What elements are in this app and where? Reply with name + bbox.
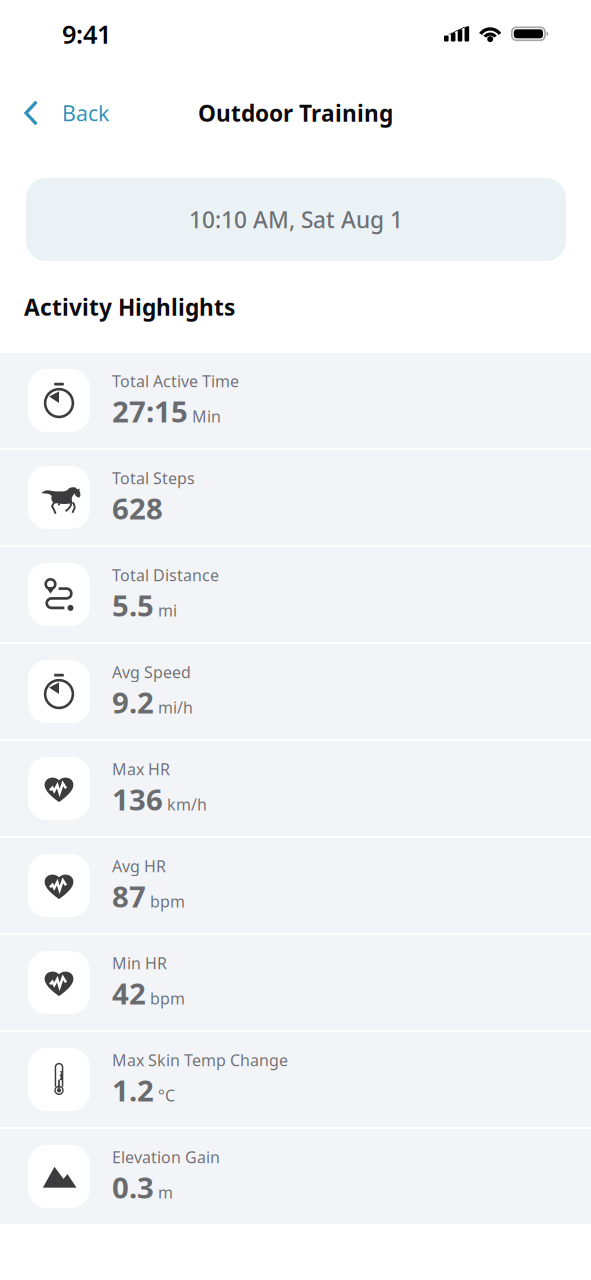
staticText: Elevation Gain — [112, 1146, 220, 1168]
staticText: Min — [192, 406, 221, 427]
staticText: mi — [158, 600, 177, 621]
staticText: 1.2 — [112, 1071, 154, 1110]
staticText: 9:41 — [62, 17, 111, 51]
staticText: 42 — [112, 974, 146, 1013]
staticText: 9.2 — [112, 683, 154, 722]
button[interactable]: Max Skin Temp Change — [0, 1032, 591, 1127]
button[interactable]: Total Distance — [0, 547, 591, 642]
button[interactable]: Back — [0, 88, 123, 138]
button[interactable]: Total Steps — [0, 450, 591, 545]
staticText: 87 — [112, 877, 146, 916]
staticText: Total Active Time — [112, 370, 239, 392]
button[interactable]: Elevation Gain — [0, 1129, 591, 1224]
staticText: bpm — [150, 891, 185, 912]
staticText: 136 — [112, 780, 163, 819]
staticText: Max HR — [112, 758, 170, 780]
button[interactable]: Avg HR — [0, 838, 591, 933]
button[interactable]: Total Active Time — [0, 353, 591, 448]
staticText: Total Steps — [112, 467, 195, 489]
staticText: 10:10 AM, Sat Aug 1 — [189, 204, 403, 234]
staticText: mi/h — [158, 697, 193, 718]
staticText: Avg Speed — [112, 661, 191, 683]
staticText: °C — [158, 1085, 175, 1106]
staticText: km/h — [167, 794, 207, 815]
staticText: Max Skin Temp Change — [112, 1049, 288, 1071]
staticText: 628 — [112, 489, 163, 528]
button[interactable]: Max HR — [0, 741, 591, 836]
staticText: 27:15 — [112, 392, 188, 431]
button[interactable]: Avg Speed — [0, 644, 591, 739]
staticText: Avg HR — [112, 855, 166, 877]
staticText: Activity Highlights — [24, 292, 235, 322]
button[interactable]: Min HR — [0, 935, 591, 1030]
staticText: bpm — [150, 988, 185, 1009]
staticText: Min HR — [112, 952, 167, 974]
staticText: Total Distance — [112, 564, 219, 586]
staticText: 0.3 — [112, 1168, 154, 1207]
staticText: 5.5 — [112, 586, 154, 625]
staticText: m — [158, 1182, 173, 1203]
staticText: Outdoor Training — [198, 98, 393, 128]
staticText: Back — [62, 99, 109, 127]
